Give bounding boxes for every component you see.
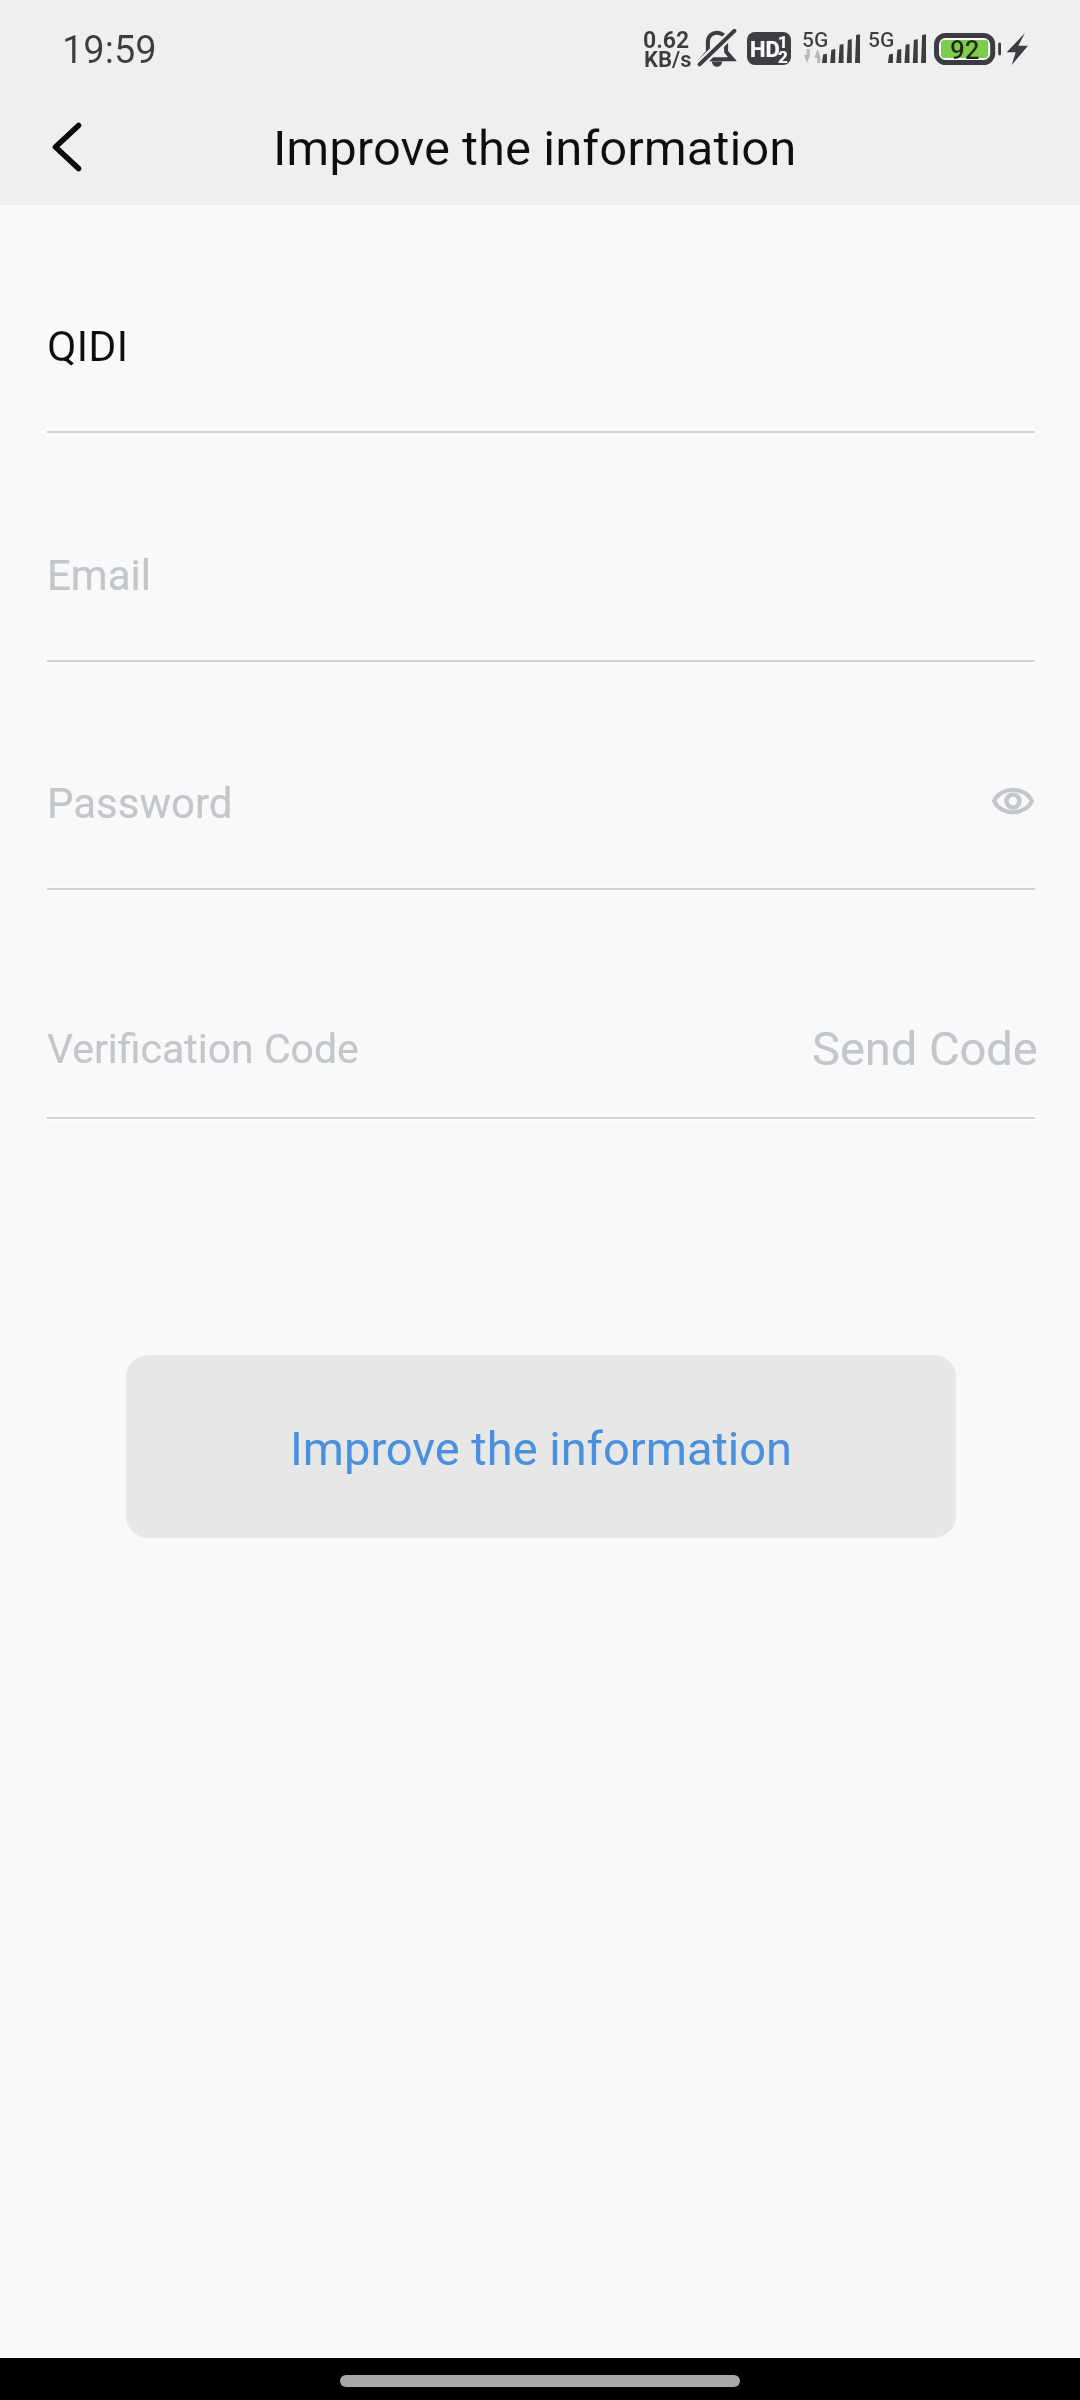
button[interactable]: Improve the information <box>126 1355 956 1538</box>
staticText: QIDI <box>47 321 129 371</box>
staticText: Improve the information <box>273 120 797 177</box>
staticText: Password <box>47 779 233 828</box>
staticText: 2 <box>778 47 788 65</box>
staticText: Email <box>47 551 151 600</box>
staticText: 0.62 <box>643 27 690 54</box>
staticText: 19:59 <box>62 28 157 73</box>
staticText: 92 <box>950 35 980 65</box>
button[interactable]: Email <box>47 540 1035 662</box>
staticText: Send Code <box>812 1021 1038 1076</box>
staticText: 5G <box>802 28 829 53</box>
staticText: 1 <box>778 32 788 52</box>
staticText: 5G <box>868 28 895 53</box>
button[interactable]: QIDI <box>47 311 1035 433</box>
staticText: KB/s <box>644 47 692 73</box>
button[interactable]: Show password <box>968 756 1058 846</box>
staticText: Improve the information <box>290 1421 793 1476</box>
button[interactable]: Verification Code <box>47 997 1035 1119</box>
staticText: Verification Code <box>47 1025 359 1073</box>
button[interactable]: Back <box>21 101 113 193</box>
staticText: HD <box>750 37 780 63</box>
button[interactable]: Send Code <box>812 1021 1038 1076</box>
button[interactable]: Password <box>47 768 1035 890</box>
